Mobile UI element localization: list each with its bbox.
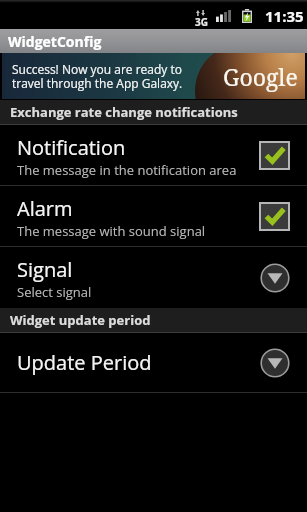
staticText: Success! Now you are ready to travel thr… <box>12 61 183 92</box>
staticText: Google <box>223 61 298 92</box>
staticText: Select signal <box>17 283 92 301</box>
button[interactable]: Signal <box>0 247 307 308</box>
button[interactable]: Open selection list <box>260 348 290 378</box>
button[interactable]: Update Period <box>0 333 307 392</box>
staticText: The message with sound signal <box>17 222 206 240</box>
staticText: The message in the notification area <box>17 161 237 179</box>
staticText: Update Period <box>17 349 260 376</box>
button[interactable]: Notification <box>0 125 307 185</box>
staticText: WidgetConfig <box>8 32 102 51</box>
staticText: Signal <box>17 256 73 283</box>
button[interactable]: Checkbox, checked <box>259 202 290 231</box>
staticText: 11:35 <box>265 6 304 26</box>
button[interactable]: Alarm <box>0 186 307 246</box>
staticText: Alarm <box>17 195 73 222</box>
button[interactable]: Checkbox, checked <box>259 141 290 170</box>
staticText: Exchange rate change notifications <box>10 103 238 121</box>
button[interactable]: Open selection list <box>260 263 290 293</box>
staticText: Notification <box>17 134 126 161</box>
staticText: 3G <box>195 15 208 29</box>
button[interactable]: Success! Now you are ready to travel thr… <box>2 53 305 99</box>
staticText: Widget update period <box>10 311 151 329</box>
